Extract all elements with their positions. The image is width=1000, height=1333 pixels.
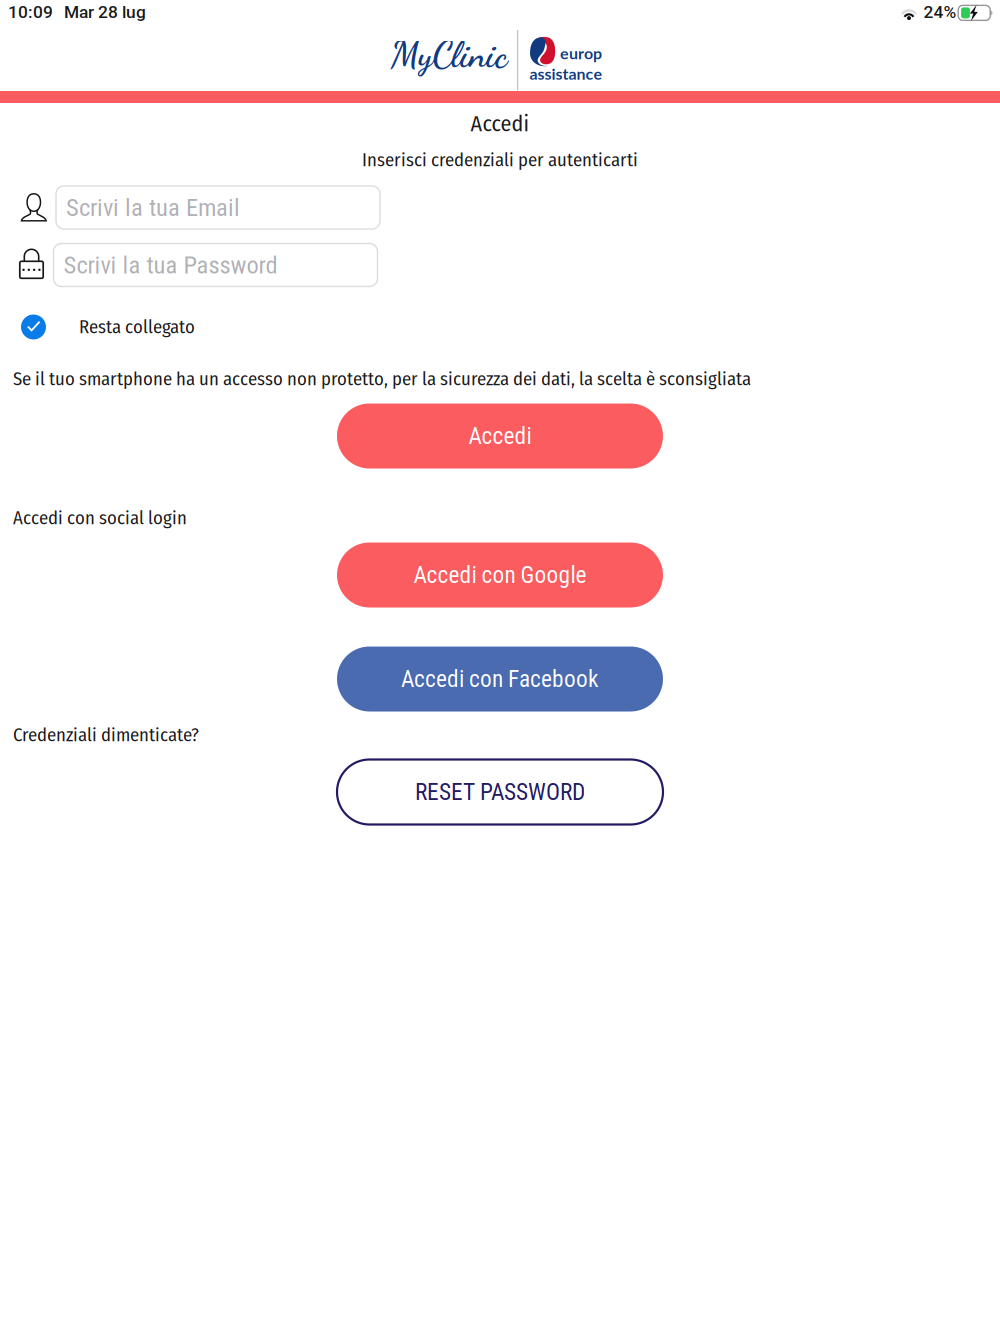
staticText: europ	[560, 43, 602, 63]
staticText: Accedi con Google	[413, 561, 586, 589]
staticText: Accedi con social login	[13, 507, 187, 529]
staticText: Accedi	[468, 422, 531, 450]
staticText: Se il tuo smartphone ha un accesso non p…	[13, 368, 751, 390]
button[interactable]: Accedi con Google	[337, 542, 663, 607]
staticText: assistance	[529, 64, 602, 83]
staticText: Credenziali dimenticate?	[13, 724, 199, 746]
button[interactable]: Accedi con Facebook	[337, 646, 663, 711]
staticText: RESET PASSWORD	[415, 778, 585, 806]
staticText: MyClinic	[390, 33, 507, 77]
staticText: Accedi con Facebook	[401, 665, 599, 693]
button[interactable]: Resta collegato	[0, 307, 300, 347]
staticText: Accedi	[470, 111, 529, 137]
staticText: Inserisci credenziali per autenticarti	[362, 149, 638, 171]
staticText: 24%	[923, 2, 956, 22]
staticText: Mar 28 lug	[64, 2, 146, 22]
button[interactable]: Scrivi la tua Email	[56, 186, 380, 229]
button[interactable]: Scrivi la tua Password	[53, 243, 377, 286]
staticText: Scrivi la tua Password	[63, 251, 277, 279]
button[interactable]: Accedi	[337, 403, 663, 468]
staticText: 10:09	[8, 2, 53, 22]
staticText: Resta collegato	[79, 316, 195, 338]
button[interactable]: RESET PASSWORD	[337, 759, 663, 824]
staticText: Scrivi la tua Email	[66, 193, 240, 222]
